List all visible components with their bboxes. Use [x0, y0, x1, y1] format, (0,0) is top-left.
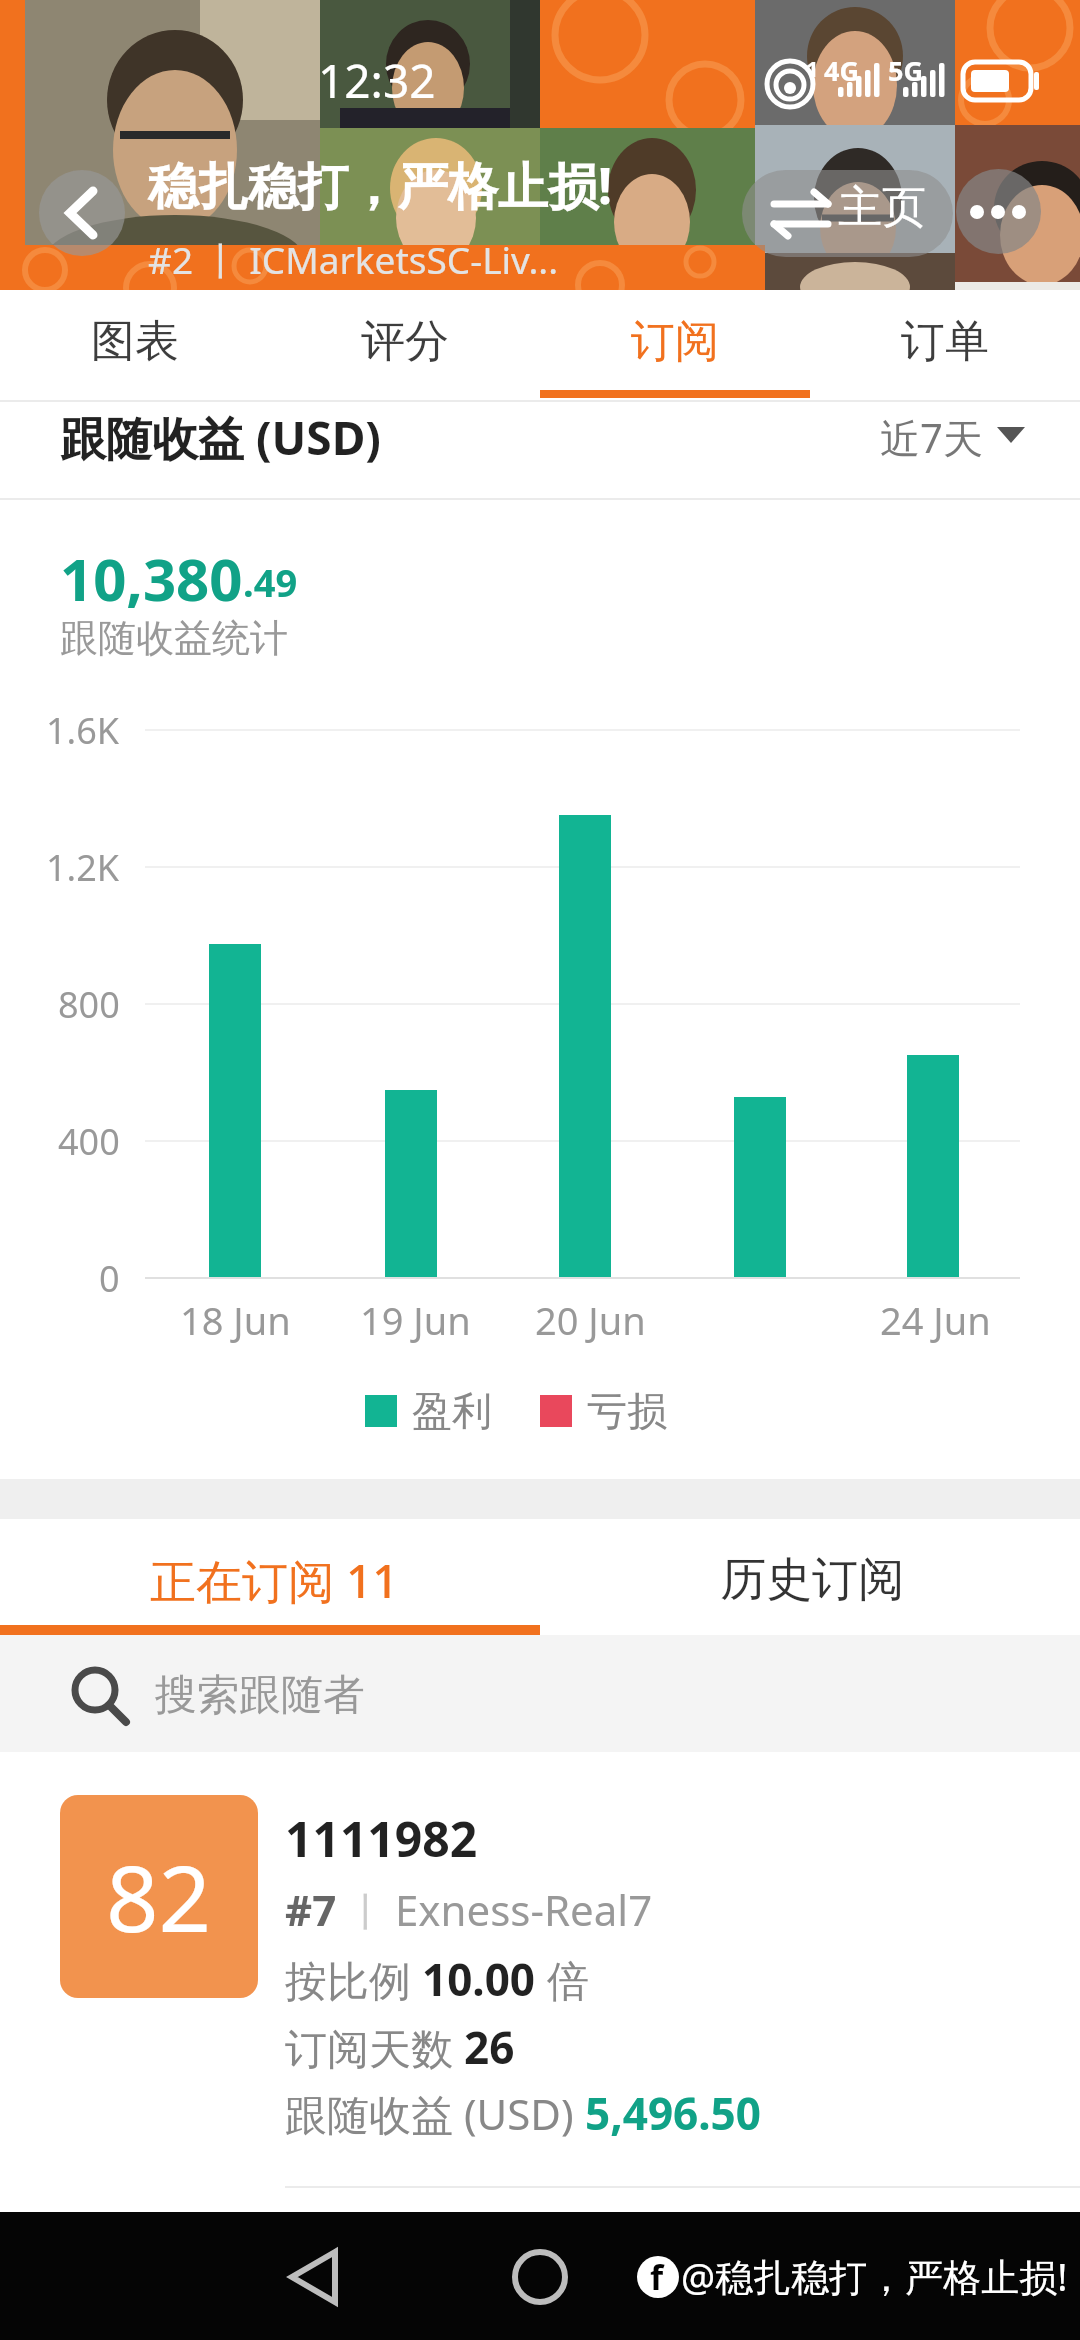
staticText: 评分 [361, 314, 449, 369]
staticText: 400 [58, 1117, 120, 1166]
staticText: 亏损 [587, 1386, 667, 1436]
staticText: 订阅 [631, 314, 719, 369]
staticText: Exness-Real7 [395, 1881, 653, 1938]
staticText: 稳扎稳打，严格止损! [148, 151, 613, 219]
button[interactable]: 历史订阅 [720, 1530, 920, 1630]
staticText: 1111982 [285, 1806, 478, 1871]
staticText: 20 Jun [535, 1294, 646, 1346]
staticText: 跟随收益 (USD) [60, 406, 381, 469]
staticText: f [650, 2254, 664, 2300]
staticText: 丨 [337, 1884, 395, 1936]
staticText: 订阅天数 [285, 2019, 464, 2076]
staticText: 10.00 [422, 1949, 536, 2009]
staticText: @稳扎稳打，严格止损! [681, 2250, 1068, 2302]
staticText: 1.2K [46, 843, 120, 892]
button[interactable]: 搜索跟随者 [0, 1635, 1080, 1752]
staticText: 10,380 [60, 539, 243, 618]
button[interactable]: 订阅 [540, 290, 810, 392]
button[interactable]: 订单 [810, 290, 1080, 392]
staticText: 搜索跟随者 [155, 1669, 365, 1722]
staticText: 1.6K [46, 706, 120, 755]
staticText: 跟随收益统计 [60, 614, 288, 662]
staticText: 正在订阅 11 [150, 1549, 399, 1612]
staticText: 24 Jun [880, 1294, 991, 1346]
button[interactable]: 评分 [270, 290, 540, 392]
button[interactable]: 图表 [0, 290, 270, 392]
staticText: 5,496.50 [585, 2083, 761, 2143]
staticText: 历史订阅 [720, 1551, 904, 1609]
button[interactable]: 近7天 [880, 387, 983, 487]
staticText: 82 [106, 1834, 212, 1959]
staticText: 0 [99, 1254, 120, 1303]
staticText: 19 Jun [360, 1294, 471, 1346]
staticText: 订单 [901, 314, 989, 369]
staticText: 盈利 [412, 1386, 492, 1436]
staticText: 18 Jun [180, 1294, 291, 1346]
button[interactable] [39, 170, 125, 256]
staticText: 跟随收益 (USD) [285, 2085, 585, 2142]
staticText: 图表 [91, 314, 179, 369]
staticText: 12:32 [318, 49, 436, 112]
staticText: 近7天 [880, 410, 983, 465]
staticText: #7 [285, 1881, 337, 1938]
staticText: 按比例 [285, 1951, 422, 2008]
staticText: 倍 [536, 1951, 589, 2008]
staticText: 800 [58, 980, 120, 1029]
button[interactable] [260, 2232, 380, 2322]
staticText: #2 丨 ICMarketsSC-Liv... [148, 234, 559, 285]
button[interactable]: 主页 [742, 170, 953, 257]
staticText: 26 [464, 2017, 515, 2077]
button[interactable] [480, 2232, 600, 2322]
staticText: 主页 [838, 180, 926, 235]
staticText: 1 [806, 53, 819, 83]
staticText: 5G [888, 52, 923, 89]
button[interactable]: 正在订阅 11 [150, 1530, 450, 1630]
button[interactable] [956, 169, 1041, 254]
button[interactable]: 82 [0, 1752, 1080, 2188]
staticText: .49 [243, 556, 298, 608]
staticText: 4G [824, 52, 859, 89]
